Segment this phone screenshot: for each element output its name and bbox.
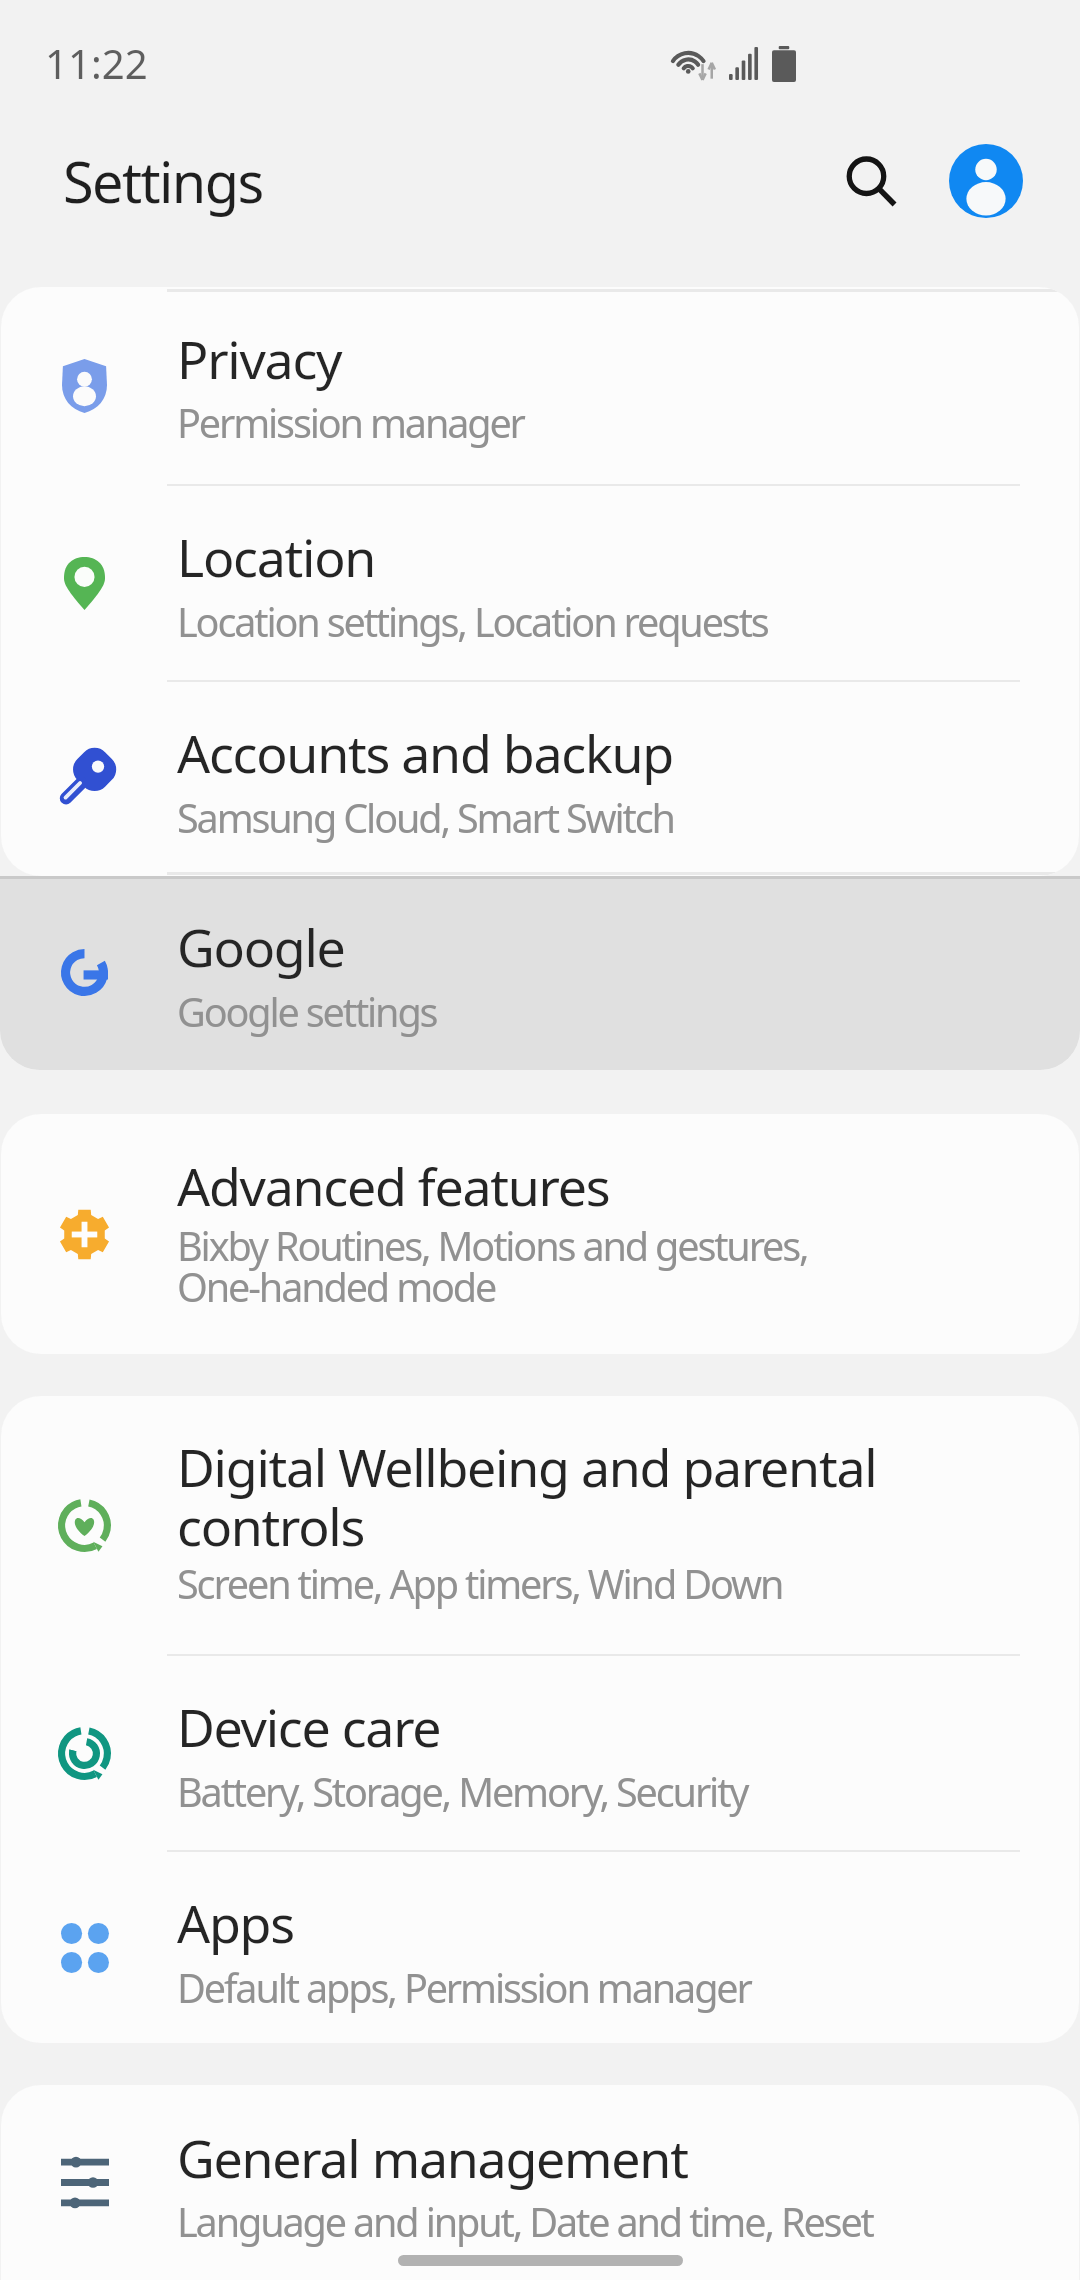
staticText: Screen time, App timers, Wind Down [177,1557,783,1611]
staticText: Location settings, Location requests [177,595,768,649]
button[interactable]: Account [914,109,1057,252]
button[interactable]: Device care [1,1656,1079,1850]
staticText: Google settings [177,985,437,1039]
staticText: Privacy [177,324,342,395]
staticText: Battery, Storage, Memory, Security [177,1765,748,1819]
button[interactable]: Digital Wellbeing and parental controls [1,1396,1079,1654]
button[interactable]: Accounts and backup [1,682,1079,876]
staticText: Permission manager [177,396,524,450]
staticText: Samsung Cloud, Smart Switch [177,791,674,845]
button[interactable]: Search [800,110,943,253]
staticText: Apps [177,1888,294,1959]
button[interactable]: Apps [1,1852,1079,2043]
button[interactable]: Advanced features [1,1114,1079,1354]
button[interactable]: Privacy [1,287,1079,484]
staticText: Device care [177,1692,441,1763]
staticText: General management [177,2123,688,2194]
button[interactable]: Location [1,486,1079,680]
staticText: Google [177,912,345,983]
staticText: Language and input, Date and time, Reset [177,2195,873,2249]
staticText: 11:22 [45,36,148,91]
staticText: Default apps, Permission manager [177,1961,751,2015]
staticText: Accounts and backup [177,718,673,789]
button[interactable]: General management [1,2085,1079,2279]
staticText: Bixby Routines, Motions and gestures, On… [177,1219,808,1314]
staticText: Location [177,522,376,593]
staticText: Digital Wellbeing and parental controls [177,1432,877,1562]
staticText: Settings [63,143,263,219]
button[interactable]: Google [0,876,1080,1070]
staticText: Advanced features [177,1151,610,1222]
